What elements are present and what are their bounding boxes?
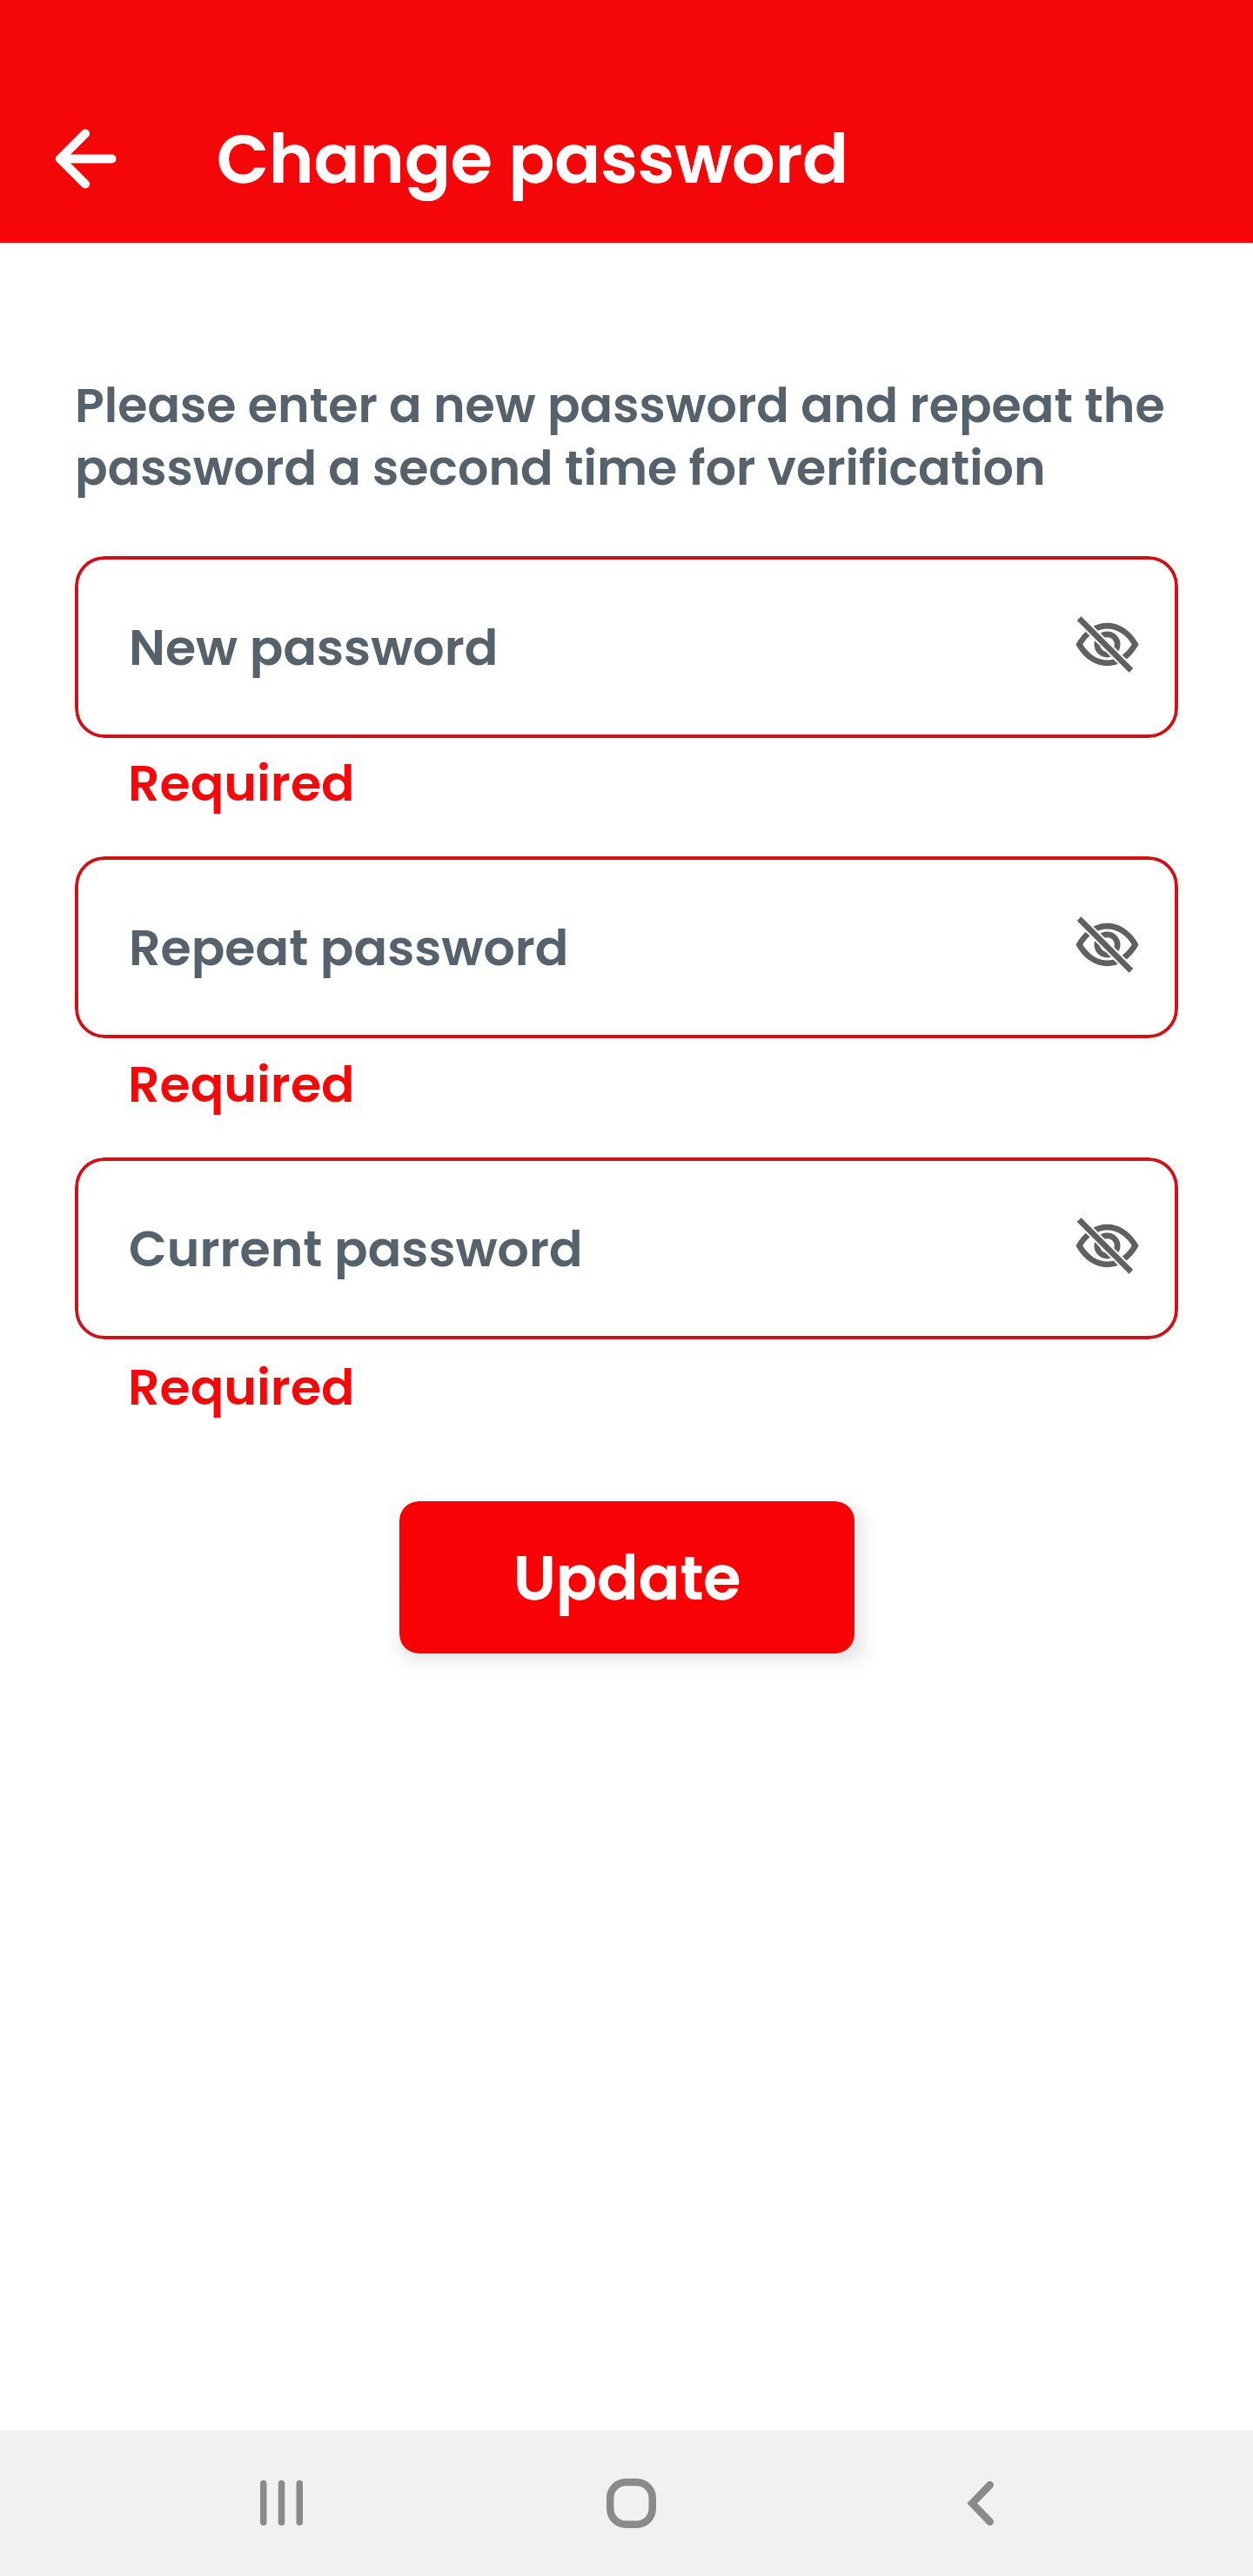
staticText: Update xyxy=(513,1535,741,1620)
button[interactable]: Update xyxy=(399,1501,854,1654)
button[interactable]: Back xyxy=(920,2442,1042,2564)
button[interactable]: Show password xyxy=(1059,1197,1155,1293)
button[interactable]: Recent apps xyxy=(220,2442,342,2564)
staticText: Repeat password xyxy=(129,913,1059,983)
button[interactable]: Show password xyxy=(1059,896,1155,992)
staticText: Current password xyxy=(129,1214,1059,1284)
staticText: Please enter a new password and repeat t… xyxy=(75,372,1180,501)
staticText: Required xyxy=(128,1352,355,1422)
button[interactable]: Show password xyxy=(1059,596,1155,692)
button[interactable]: Home xyxy=(570,2442,692,2564)
staticText: Required xyxy=(128,1050,355,1119)
staticText: Change password xyxy=(217,111,849,206)
button[interactable]: Navigate up xyxy=(12,97,160,220)
staticText: New password xyxy=(129,613,1059,682)
button[interactable]: Current password xyxy=(75,1157,1178,1339)
button[interactable]: Repeat password xyxy=(75,856,1178,1038)
staticText: Required xyxy=(128,748,355,818)
button[interactable]: New password xyxy=(75,556,1178,738)
